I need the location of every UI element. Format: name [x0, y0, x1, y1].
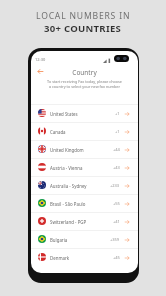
- staticText: +1: [115, 129, 120, 134]
- button[interactable]: Brasil - São Paulo: [31, 194, 138, 212]
- staticText: 30+ COUNTRIES: [44, 22, 122, 35]
- staticText: +45: [113, 255, 120, 260]
- staticText: United Kingdom: [50, 147, 84, 153]
- staticText: +41: [113, 219, 120, 224]
- staticText: +233: [110, 183, 120, 188]
- staticText: To start receiving Fax today, please cho…: [31, 79, 138, 89]
- button[interactable]: Bulgaria: [31, 230, 138, 248]
- staticText: +55: [113, 201, 120, 206]
- button[interactable]: Switzerland - PGP: [31, 212, 138, 230]
- staticText: +1: [115, 111, 120, 116]
- staticText: Country: [31, 68, 138, 77]
- staticText: United States: [50, 111, 78, 117]
- staticText: +359: [110, 237, 120, 242]
- staticText: Bulgaria: [50, 237, 68, 243]
- button[interactable]: Canada: [31, 122, 138, 140]
- staticText: Switzerland - PGP: [50, 219, 87, 225]
- staticText: Austria - Vienna: [50, 165, 83, 171]
- staticText: +43: [113, 165, 120, 170]
- button[interactable]: Australia - Sydney: [31, 176, 138, 194]
- button[interactable]: United States: [31, 104, 138, 122]
- button[interactable]: United Kingdom: [31, 140, 138, 158]
- staticText: Canada: [50, 129, 66, 135]
- staticText: LOCAL NUMBERS IN: [36, 10, 131, 22]
- staticText: +44: [113, 147, 120, 152]
- button[interactable]: Austria - Vienna: [31, 158, 138, 176]
- staticText: Denmark: [50, 255, 70, 261]
- button[interactable]: Denmark: [31, 248, 138, 266]
- staticText: Australia - Sydney: [50, 183, 87, 189]
- button[interactable]: Back: [35, 66, 46, 77]
- staticText: Brasil - São Paulo: [50, 201, 86, 207]
- staticText: 12:30: [35, 57, 46, 62]
